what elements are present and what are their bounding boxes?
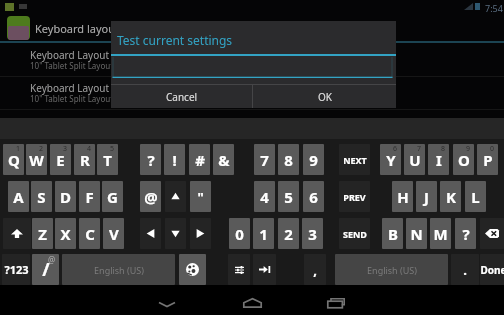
- staticText: PREV: [343, 191, 366, 203]
- button[interactable]: 2: [278, 218, 299, 249]
- button[interactable]: R: [74, 144, 95, 175]
- button[interactable]: ?: [140, 144, 161, 175]
- button[interactable]: Cancel: [111, 85, 252, 108]
- staticText: OK: [318, 90, 332, 104]
- staticText: ?123: [4, 262, 29, 277]
- staticText: 6: [309, 187, 318, 207]
- button[interactable]: M: [430, 218, 451, 249]
- staticText: X: [60, 224, 71, 244]
- staticText: 1: [259, 224, 268, 244]
- button[interactable]: Up: [165, 181, 186, 212]
- staticText: 7: [417, 144, 422, 154]
- staticText: H: [397, 187, 409, 207]
- staticText: 5: [284, 187, 293, 207]
- button[interactable]: Hide keyboard: [137, 285, 197, 315]
- button[interactable]: D: [55, 181, 76, 212]
- button[interactable]: Settings: [228, 254, 250, 285]
- staticText: @: [144, 187, 158, 207]
- staticText: 10" Tablet Split Layout: [30, 93, 114, 104]
- button[interactable]: Y: [380, 144, 401, 175]
- staticText: M: [433, 224, 448, 244]
- button[interactable]: 4: [254, 181, 275, 212]
- button[interactable]: I: [428, 144, 449, 175]
- button[interactable]: U: [404, 144, 425, 175]
- button[interactable]: T: [97, 144, 118, 175]
- button[interactable]: Q: [3, 144, 24, 175]
- button[interactable]: A: [8, 181, 29, 212]
- staticText: W: [29, 150, 44, 170]
- staticText: U: [409, 150, 421, 170]
- button[interactable]: Left: [140, 218, 161, 249]
- staticText: ?: [147, 150, 155, 170]
- button[interactable]: C: [79, 218, 100, 249]
- button[interactable]: .: [451, 254, 479, 285]
- button[interactable]: Recent apps: [306, 285, 366, 315]
- button[interactable]: K: [440, 181, 461, 212]
- button[interactable]: V: [103, 218, 124, 249]
- button[interactable]: Z: [32, 218, 53, 249]
- staticText: 9: [466, 144, 471, 154]
- button[interactable]: X: [55, 218, 76, 249]
- button[interactable]: 1: [253, 218, 274, 249]
- staticText: SEND: [343, 228, 367, 240]
- button[interactable]: N: [406, 218, 427, 249]
- staticText: Y: [386, 150, 396, 170]
- button[interactable]: English (US): [335, 254, 448, 285]
- button[interactable]: 6: [303, 181, 324, 212]
- button[interactable]: Home: [222, 285, 282, 315]
- staticText: R: [80, 150, 90, 170]
- button[interactable]: 7: [254, 144, 275, 175]
- button[interactable]: NEXT: [339, 144, 370, 175]
- staticText: /: [42, 257, 50, 282]
- button[interactable]: &: [213, 144, 234, 175]
- button[interactable]: S: [31, 181, 52, 212]
- button[interactable]: Shift: [3, 218, 31, 249]
- button[interactable]: Keyboard Layout (Portrait): [0, 47, 504, 75]
- button[interactable]: /: [32, 254, 59, 285]
- button[interactable]: Keyboard Layout (Portrait): [0, 80, 504, 108]
- button[interactable]: PREV: [339, 181, 370, 212]
- button[interactable]: 5: [278, 181, 299, 212]
- button[interactable]: !: [164, 144, 185, 175]
- staticText: 5: [110, 144, 115, 154]
- button[interactable]: Done: [480, 254, 504, 285]
- button[interactable]: B: [382, 218, 403, 249]
- button[interactable]: Down: [165, 218, 186, 249]
- button[interactable]: 9: [303, 144, 324, 175]
- button[interactable]: ,: [304, 254, 326, 285]
- button[interactable]: O: [453, 144, 474, 175]
- button[interactable]: ": [190, 181, 211, 212]
- button[interactable]: G: [102, 181, 123, 212]
- button[interactable]: 0: [229, 218, 250, 249]
- staticText: 9: [309, 150, 318, 170]
- staticText: Test current settings: [117, 32, 233, 48]
- button[interactable]: Backspace: [480, 218, 504, 249]
- button[interactable]: Right: [190, 218, 211, 249]
- button[interactable]: 8: [278, 144, 299, 175]
- button[interactable]: E: [50, 144, 71, 175]
- button[interactable]: P: [477, 144, 498, 175]
- button[interactable]: ?: [455, 218, 476, 249]
- button[interactable]: Change language: [179, 254, 206, 285]
- staticText: Keyboard Layout (Portrait): [30, 81, 154, 95]
- staticText: G: [107, 187, 118, 207]
- button[interactable]: F: [79, 181, 100, 212]
- staticText: 2: [39, 144, 44, 154]
- button[interactable]: 3: [302, 218, 323, 249]
- button[interactable]: OK: [253, 85, 396, 108]
- staticText: 10" Tablet Split Layout: [30, 60, 114, 71]
- staticText: Q: [8, 150, 20, 170]
- staticText: @: [48, 254, 56, 265]
- staticText: 2: [284, 224, 293, 244]
- button[interactable]: J: [416, 181, 437, 212]
- button[interactable]: SEND: [339, 218, 370, 249]
- button[interactable]: W: [26, 144, 47, 175]
- button[interactable]: #: [189, 144, 210, 175]
- button[interactable]: L: [465, 181, 486, 212]
- staticText: N: [410, 224, 423, 244]
- button[interactable]: @: [140, 181, 161, 212]
- button[interactable]: Tab: [253, 254, 276, 285]
- button[interactable]: H: [392, 181, 413, 212]
- button[interactable]: ?123: [2, 254, 30, 285]
- button[interactable]: English (US): [62, 254, 175, 285]
